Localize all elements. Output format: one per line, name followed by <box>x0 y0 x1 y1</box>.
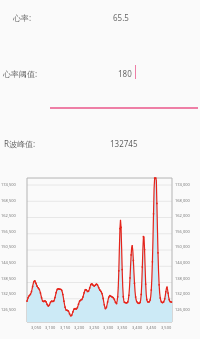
staticText: 132,500 <box>1 291 16 296</box>
staticText: 65.5 <box>113 12 129 23</box>
staticText: 3,150 <box>60 325 71 330</box>
staticText: 150,500 <box>1 244 16 249</box>
staticText: 162,500 <box>1 213 16 218</box>
staticText: 150,000 <box>175 244 190 249</box>
staticText: 168,000 <box>175 198 190 203</box>
staticText: R波峰值: <box>4 138 36 149</box>
staticText: 3,400 <box>132 325 143 330</box>
staticText: 156,500 <box>1 229 16 234</box>
staticText: 3,050 <box>31 325 42 330</box>
staticText: 3,200 <box>74 325 85 330</box>
staticText: 3,300 <box>103 325 114 330</box>
button[interactable]: R peak waveform chart <box>27 178 172 322</box>
staticText: 心率阈值: <box>3 68 38 79</box>
staticText: 132745 <box>110 138 138 149</box>
staticText: 3,100 <box>45 325 56 330</box>
staticText: 174,500 <box>1 182 16 187</box>
staticText: 126,000 <box>175 307 190 312</box>
staticText: 126,500 <box>1 307 16 312</box>
staticText: 138,500 <box>1 276 16 281</box>
staticText: 174,000 <box>175 182 190 187</box>
staticText: 132,000 <box>175 291 190 296</box>
staticText: 3,500 <box>161 325 172 330</box>
staticText: 162,000 <box>175 213 190 218</box>
staticText: 3,350 <box>117 325 128 330</box>
staticText: 138,000 <box>175 276 190 281</box>
staticText: 180 <box>118 68 132 79</box>
staticText: 168,500 <box>1 198 16 203</box>
staticText: 156,000 <box>175 229 190 234</box>
button[interactable]: 心率阈值: <box>0 60 200 92</box>
staticText: 144,000 <box>175 260 190 265</box>
staticText: 3,250 <box>89 325 100 330</box>
staticText: 心率: <box>13 12 32 23</box>
button[interactable]: 心率: <box>0 6 200 32</box>
staticText: 3,450 <box>146 325 157 330</box>
button[interactable]: R波峰值: <box>0 132 200 158</box>
staticText: 144,500 <box>1 260 16 265</box>
